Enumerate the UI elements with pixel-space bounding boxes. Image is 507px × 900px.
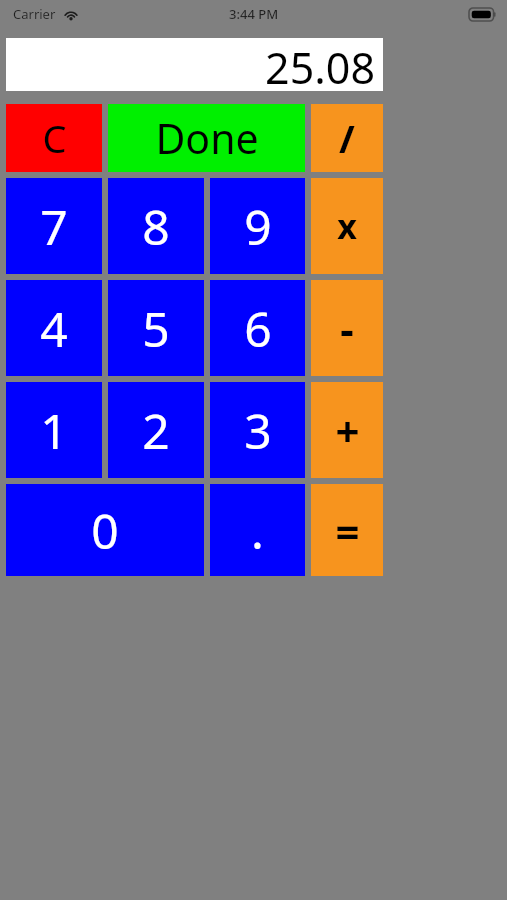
staticText: 2 — [142, 398, 170, 463]
button[interactable]: + — [311, 382, 383, 478]
staticText: 25.08 — [265, 38, 375, 91]
button[interactable]: . — [210, 484, 305, 576]
button[interactable]: 3 — [210, 382, 305, 478]
staticText: - — [340, 300, 354, 357]
button[interactable]: 7 — [6, 178, 102, 274]
button[interactable]: 5 — [108, 280, 204, 376]
button[interactable]: 6 — [210, 280, 305, 376]
staticText: 1 — [40, 398, 68, 463]
button[interactable]: 4 — [6, 280, 102, 376]
button[interactable]: 1 — [6, 382, 102, 478]
button[interactable]: 8 — [108, 178, 204, 274]
staticText: 6 — [244, 296, 272, 361]
button[interactable]: / — [311, 104, 383, 172]
button[interactable]: 2 — [108, 382, 204, 478]
staticText: . — [251, 498, 264, 563]
staticText: + — [335, 402, 360, 459]
staticText: 5 — [142, 296, 170, 361]
button[interactable]: 9 — [210, 178, 305, 274]
staticText: 9 — [244, 194, 272, 259]
button[interactable]: = — [311, 484, 383, 576]
staticText: C — [42, 112, 67, 164]
staticText: Done — [155, 110, 259, 166]
button[interactable]: x — [311, 178, 383, 274]
staticText: 7 — [40, 194, 68, 259]
button[interactable]: C — [6, 104, 102, 172]
staticText: 3:44 PM — [229, 5, 279, 23]
button[interactable]: - — [311, 280, 383, 376]
button[interactable]: 0 — [6, 484, 204, 576]
staticText: Carrier — [13, 5, 56, 23]
staticText: = — [335, 502, 360, 559]
staticText: 0 — [91, 498, 119, 563]
staticText: x — [337, 203, 357, 249]
staticText: / — [339, 112, 355, 164]
staticText: 8 — [142, 194, 170, 259]
button[interactable]: Done — [108, 104, 305, 172]
staticText: 4 — [40, 296, 68, 361]
staticText: 3 — [244, 398, 272, 463]
